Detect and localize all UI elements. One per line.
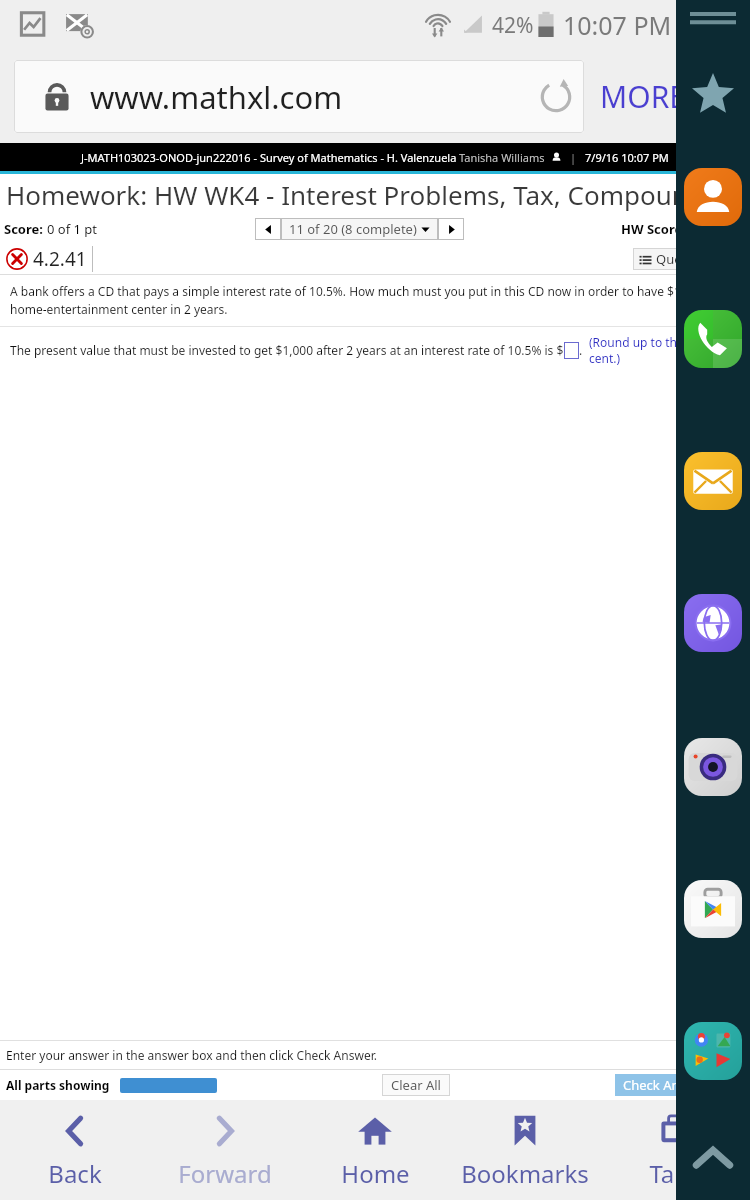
button[interactable]: App xyxy=(684,880,742,938)
staticText: Back xyxy=(48,1157,102,1190)
staticText: . xyxy=(579,342,589,358)
button[interactable]: App xyxy=(684,310,742,368)
button[interactable]: Progress xyxy=(120,1078,217,1093)
staticText: J-MATH103023-ONOD-jun222016 - Survey of … xyxy=(81,150,457,165)
button[interactable]: Collapse panel xyxy=(686,1132,740,1186)
button[interactable]: Favorites xyxy=(690,72,736,118)
staticText: Forward xyxy=(178,1157,272,1190)
staticText: A bank offers a CD that pays a simple in… xyxy=(10,283,740,318)
staticText: Tabs xyxy=(649,1157,701,1190)
button[interactable]: www.mathxl.com xyxy=(14,60,584,133)
button[interactable]: MORE xyxy=(600,76,686,117)
button[interactable]: App xyxy=(684,168,742,226)
button[interactable]: Home xyxy=(300,1100,450,1200)
staticText: Check Answer xyxy=(623,1076,709,1094)
button[interactable]: Bookmarks xyxy=(450,1100,600,1200)
button[interactable]: More options xyxy=(720,1074,746,1096)
staticText: Bookmarks xyxy=(461,1157,589,1190)
button[interactable] xyxy=(564,342,579,359)
staticText: Score: xyxy=(4,220,47,238)
button[interactable]: Reload xyxy=(532,73,580,121)
staticText: www.mathxl.com xyxy=(90,76,343,118)
staticText: (Round up to the nearest cent.) xyxy=(589,334,740,366)
staticText: Home xyxy=(341,1157,410,1190)
button[interactable]: Tabs xyxy=(600,1100,750,1200)
staticText: 40%, 8 of xyxy=(690,220,746,238)
staticText: HW Score: xyxy=(621,220,690,238)
button[interactable]: Previous question xyxy=(255,218,281,240)
staticText: Question Help xyxy=(656,250,744,268)
button[interactable]: Check Answer xyxy=(615,1074,717,1096)
staticText: 10:07 PM xyxy=(563,8,672,42)
button[interactable]: Forward xyxy=(150,1100,300,1200)
staticText: 7/9/16 10:07 PM xyxy=(585,150,669,165)
staticText: Homework: HW WK4 - Interest Problems, Ta… xyxy=(6,177,750,212)
button[interactable]: App xyxy=(684,594,742,652)
button[interactable]: Clear All xyxy=(382,1074,450,1096)
staticText: All parts showing xyxy=(6,1077,110,1093)
button[interactable]: 11 of 20 (8 complete) xyxy=(281,218,438,240)
button[interactable]: App xyxy=(684,738,742,796)
staticText: | xyxy=(570,150,577,165)
staticText: Clear All xyxy=(391,1076,441,1094)
staticText: Tanisha Williams xyxy=(459,150,545,165)
staticText: 11 of 20 (8 complete) xyxy=(289,220,417,238)
staticText: 0 of 1 pt xyxy=(47,220,98,238)
button[interactable]: App xyxy=(684,1022,742,1080)
button[interactable]: Question Help xyxy=(633,248,750,270)
button[interactable]: App xyxy=(684,452,742,510)
staticText: 4.2.41 xyxy=(33,246,87,272)
staticText: Enter your answer in the answer box and … xyxy=(6,1047,377,1063)
staticText: 42% xyxy=(492,11,534,40)
staticText: MORE xyxy=(600,76,686,117)
button[interactable]: Next question xyxy=(438,218,464,240)
staticText: The present value that must be invested … xyxy=(10,342,564,358)
button[interactable]: Back xyxy=(0,1100,150,1200)
